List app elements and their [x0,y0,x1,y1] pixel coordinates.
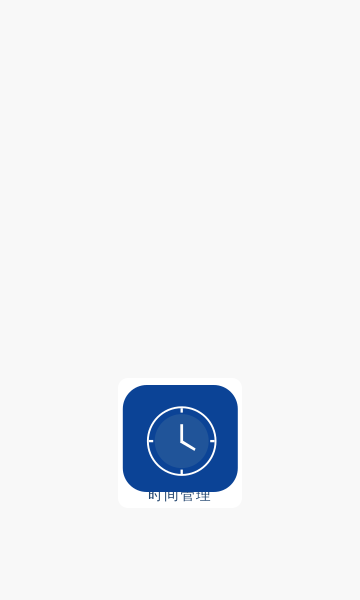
staticText: 时间管理 [148,485,211,503]
button[interactable]: 时间管理 [118,378,242,508]
